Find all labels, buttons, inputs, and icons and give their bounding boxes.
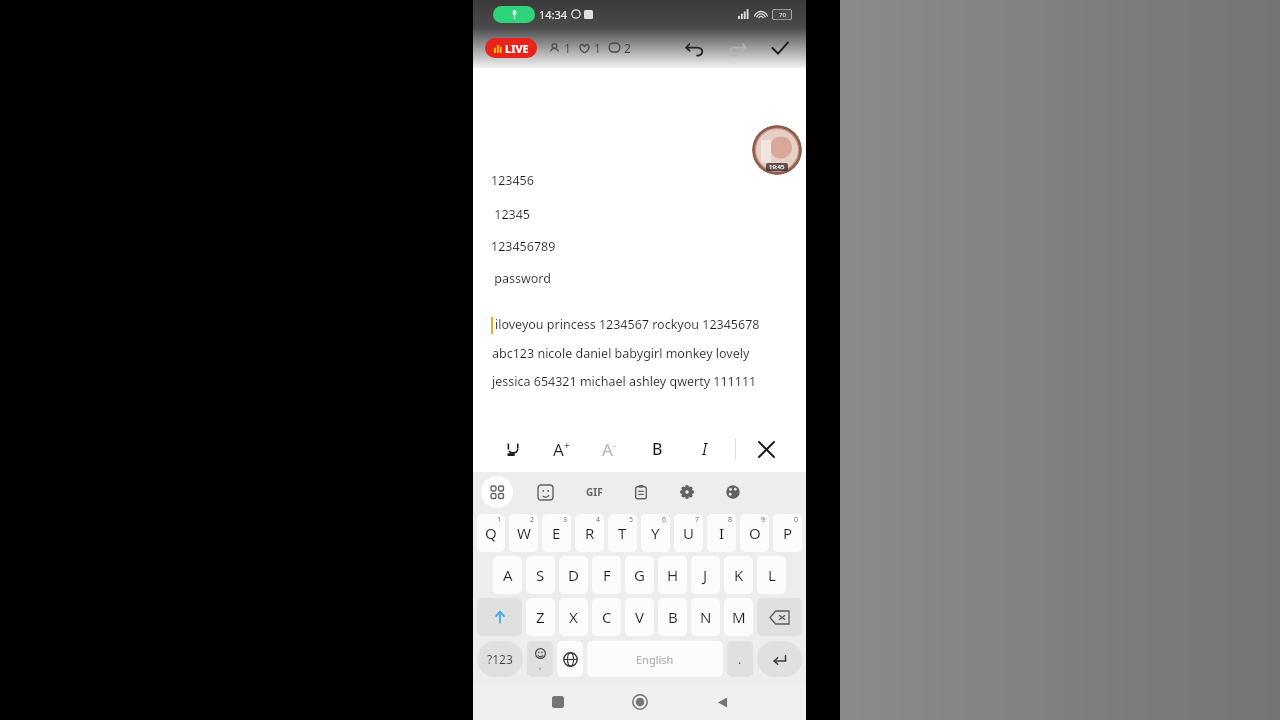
button[interactable]: W <box>509 514 538 552</box>
staticText: Y <box>651 523 660 543</box>
button[interactable]: Toolbar <box>481 476 513 508</box>
staticText: password <box>491 270 551 287</box>
button[interactable]: Redo <box>716 28 758 68</box>
button[interactable]: Done <box>758 28 802 68</box>
button[interactable]: A <box>493 556 522 594</box>
button[interactable]: Emoji <box>527 641 553 677</box>
staticText: F <box>603 565 611 585</box>
button[interactable]: Recents <box>528 684 588 720</box>
staticText: B <box>652 438 663 460</box>
staticText: 1 <box>594 40 601 56</box>
staticText: English <box>636 652 674 667</box>
staticText: A <box>602 438 613 461</box>
button[interactable]: Back <box>692 684 752 720</box>
staticText: E <box>552 523 561 543</box>
staticText: L <box>768 565 776 585</box>
button[interactable]: C <box>592 598 621 636</box>
staticText: 19:45 <box>769 163 785 171</box>
staticText: C <box>602 607 612 627</box>
staticText: 5 <box>629 515 634 525</box>
button[interactable]: X <box>559 598 588 636</box>
staticText: 70 <box>779 11 786 19</box>
staticText: 0 <box>794 515 799 525</box>
button[interactable]: J <box>691 556 720 594</box>
button[interactable]: D <box>559 556 588 594</box>
button[interactable]: N <box>691 598 720 636</box>
button[interactable]: Y <box>641 514 670 552</box>
button[interactable]: Backspace <box>757 598 802 636</box>
button[interactable]: H <box>658 556 687 594</box>
staticText: X <box>569 607 578 627</box>
staticText: P <box>783 523 793 543</box>
staticText: A <box>553 438 564 461</box>
button[interactable]: Highlight <box>495 431 531 467</box>
button[interactable]: I <box>707 514 736 552</box>
button[interactable]: Z <box>526 598 555 636</box>
staticText: abc123 nicole daniel babygirl monkey lov… <box>492 345 750 362</box>
button[interactable]: Theme <box>717 476 749 508</box>
staticText: ?123 <box>487 651 513 667</box>
button[interactable]: Change language <box>557 641 583 677</box>
staticText: GIF <box>586 485 603 499</box>
button[interactable]: B <box>658 598 687 636</box>
staticText: J <box>703 565 708 585</box>
staticText: 7 <box>695 515 700 525</box>
button[interactable]: P <box>773 514 802 552</box>
staticText: 9 <box>761 515 766 525</box>
button[interactable]: K <box>724 556 753 594</box>
button[interactable]: M <box>724 598 753 636</box>
button[interactable]: GIF <box>577 475 611 509</box>
button[interactable]: Increase font size <box>543 431 579 467</box>
staticText: U <box>683 523 694 543</box>
button[interactable]: Decrease font size <box>591 431 627 467</box>
staticText: 123456 <box>491 172 534 189</box>
staticText: 4 <box>596 515 601 525</box>
staticText: G <box>634 565 645 585</box>
staticText: I <box>702 438 708 460</box>
staticText: 6 <box>662 515 667 525</box>
staticText: 1 <box>564 40 571 56</box>
staticText: N <box>700 607 712 627</box>
button[interactable]: Enter <box>757 641 802 677</box>
button[interactable]: English <box>587 641 723 677</box>
button[interactable]: Shift <box>477 598 522 636</box>
button[interactable]: Stickers <box>529 476 561 508</box>
button[interactable]: Close <box>748 431 784 467</box>
button[interactable]: B <box>639 431 675 467</box>
button[interactable]: Profile photo <box>752 125 802 175</box>
staticText: 12345 <box>491 206 531 223</box>
button[interactable]: T <box>608 514 637 552</box>
staticText: D <box>568 565 579 585</box>
button[interactable]: F <box>592 556 621 594</box>
staticText: jessica 654321 michael ashley qwerty 111… <box>492 373 757 390</box>
button[interactable]: Q <box>477 514 505 552</box>
staticText: - <box>613 438 617 452</box>
button[interactable]: V <box>625 598 654 636</box>
button[interactable]: Undo <box>674 28 716 68</box>
button[interactable]: O <box>740 514 769 552</box>
staticText: 123456789 <box>491 238 556 255</box>
button[interactable]: U <box>674 514 703 552</box>
staticText: S <box>536 565 545 585</box>
button[interactable]: Home <box>610 684 670 720</box>
staticText: 2 <box>624 40 631 56</box>
button[interactable]: ?123 <box>477 641 523 677</box>
button[interactable]: Settings <box>671 476 703 508</box>
staticText: . <box>738 650 742 668</box>
staticText: B <box>668 607 678 627</box>
button[interactable]: G <box>625 556 654 594</box>
staticText: T <box>618 523 627 543</box>
staticText: K <box>734 565 744 585</box>
button[interactable]: L <box>757 556 786 594</box>
staticText: O <box>749 523 761 543</box>
button[interactable]: LIVE <box>485 38 537 58</box>
button[interactable]: I <box>687 431 723 467</box>
button[interactable]: Clipboard <box>625 476 657 508</box>
button[interactable]: R <box>575 514 604 552</box>
staticText: W <box>517 523 531 543</box>
button[interactable]: . <box>727 641 753 677</box>
button[interactable]: E <box>542 514 571 552</box>
button[interactable]: S <box>526 556 555 594</box>
staticText: Z <box>536 607 545 627</box>
staticText: A <box>503 565 513 585</box>
